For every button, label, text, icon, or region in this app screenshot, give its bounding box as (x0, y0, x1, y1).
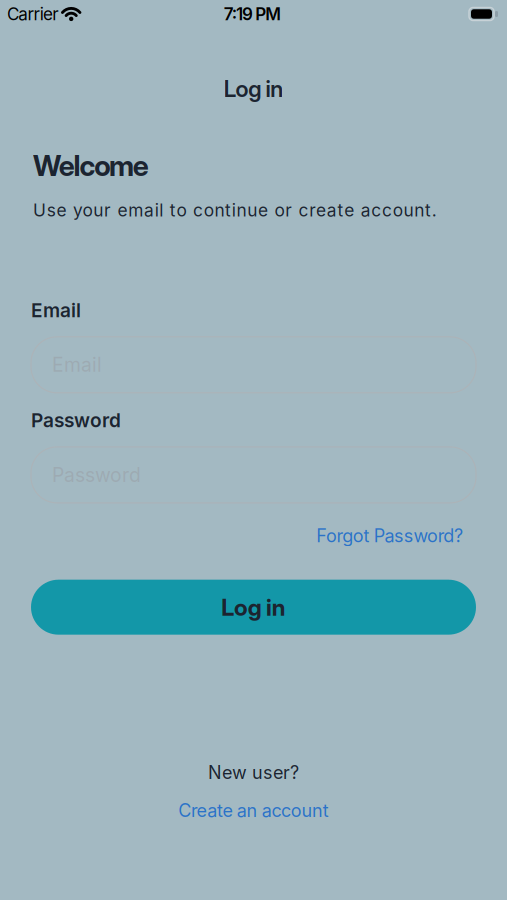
staticText: 7:19 PM (224, 4, 281, 24)
staticText: New user? (208, 762, 299, 783)
button[interactable]: Log in (31, 580, 476, 635)
staticText: Log in (224, 75, 283, 102)
staticText: Create an account (178, 799, 329, 821)
staticText: Forgot Password? (316, 525, 463, 547)
staticText: Carrier (7, 4, 58, 24)
staticText: Password (52, 463, 141, 487)
staticText: Password (31, 409, 121, 432)
staticText: Log in (221, 593, 286, 621)
staticText: Use your email to continue or create acc… (33, 200, 437, 221)
staticText: Email (31, 299, 81, 322)
button[interactable]: Create an account (178, 799, 329, 821)
staticText: Welcome (33, 148, 149, 183)
staticText: Email (52, 353, 102, 376)
button[interactable]: Forgot Password? (316, 525, 463, 547)
